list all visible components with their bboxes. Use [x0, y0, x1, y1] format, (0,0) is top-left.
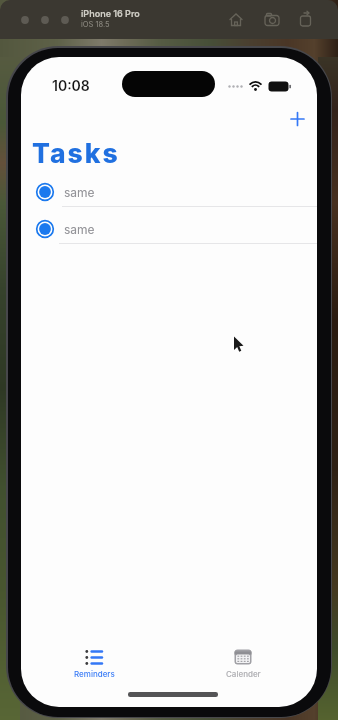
- staticText: 10:08: [52, 77, 90, 94]
- staticText: iOS 18.5: [81, 20, 110, 29]
- button[interactable]: same: [21, 174, 317, 210]
- staticText: Reminders: [74, 669, 115, 679]
- staticText: Tasks: [32, 137, 120, 169]
- staticText: same: [64, 222, 95, 237]
- staticText: Calender: [226, 669, 261, 679]
- button[interactable]: Calender: [213, 649, 273, 691]
- button[interactable]: same: [21, 211, 317, 247]
- button[interactable]: Reminders: [64, 648, 124, 688]
- button[interactable]: [284, 105, 311, 132]
- staticText: same: [64, 185, 95, 200]
- staticText: iPhone 16 Pro: [81, 8, 140, 19]
